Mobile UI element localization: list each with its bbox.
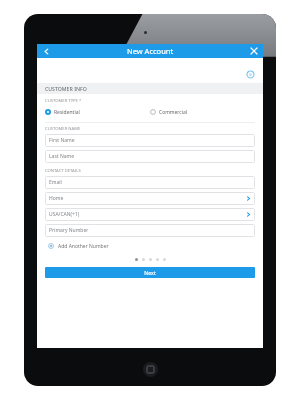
staticText: CUSTOMER NAME (45, 126, 81, 132)
staticText: CUSTOMER INFO (45, 85, 87, 92)
staticText: Commercial (159, 109, 188, 116)
staticText: CONTACT DETAILS (45, 168, 81, 174)
button[interactable]: Email (45, 176, 255, 189)
staticText: Email (49, 179, 251, 186)
staticText: Primary Number (49, 227, 251, 234)
button[interactable]: Add Another Number (45, 240, 255, 252)
button[interactable]: First Name (45, 134, 255, 147)
button[interactable]: Last Name (45, 150, 255, 163)
button[interactable]: Close (245, 44, 263, 58)
button[interactable]: Primary Number (45, 224, 255, 237)
button[interactable]: USA/CAN(+1) (45, 208, 255, 221)
button[interactable]: Residential (45, 106, 150, 118)
button[interactable]: Information (244, 68, 256, 80)
staticText: Add Another Number (58, 243, 109, 250)
staticText: First Name (49, 137, 251, 144)
button[interactable]: Commercial (150, 106, 255, 118)
button[interactable]: Next (45, 267, 255, 278)
staticText: Home (49, 195, 246, 202)
staticText: USA/CAN(+1) (49, 211, 246, 218)
staticText: CUSTOMER TYPE * (45, 98, 82, 104)
staticText: New Account (127, 46, 174, 56)
staticText: Residential (54, 109, 80, 116)
button[interactable]: Home (45, 192, 255, 205)
staticText: Next (144, 269, 156, 276)
staticText: Last Name (49, 153, 251, 160)
button[interactable]: Back (37, 44, 55, 58)
